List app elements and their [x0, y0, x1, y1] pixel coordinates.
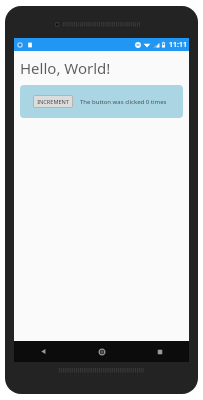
staticText: INCREMENT	[37, 98, 69, 105]
button[interactable]: Back	[14, 341, 73, 362]
staticText: 11:11	[169, 40, 187, 50]
button[interactable]: Recent apps	[131, 341, 189, 362]
staticText: Hello, World!	[20, 58, 111, 78]
button[interactable]: INCREMENT	[33, 95, 73, 108]
button[interactable]: Home	[73, 341, 131, 362]
staticText: The button was clicked 0 times	[80, 98, 167, 106]
